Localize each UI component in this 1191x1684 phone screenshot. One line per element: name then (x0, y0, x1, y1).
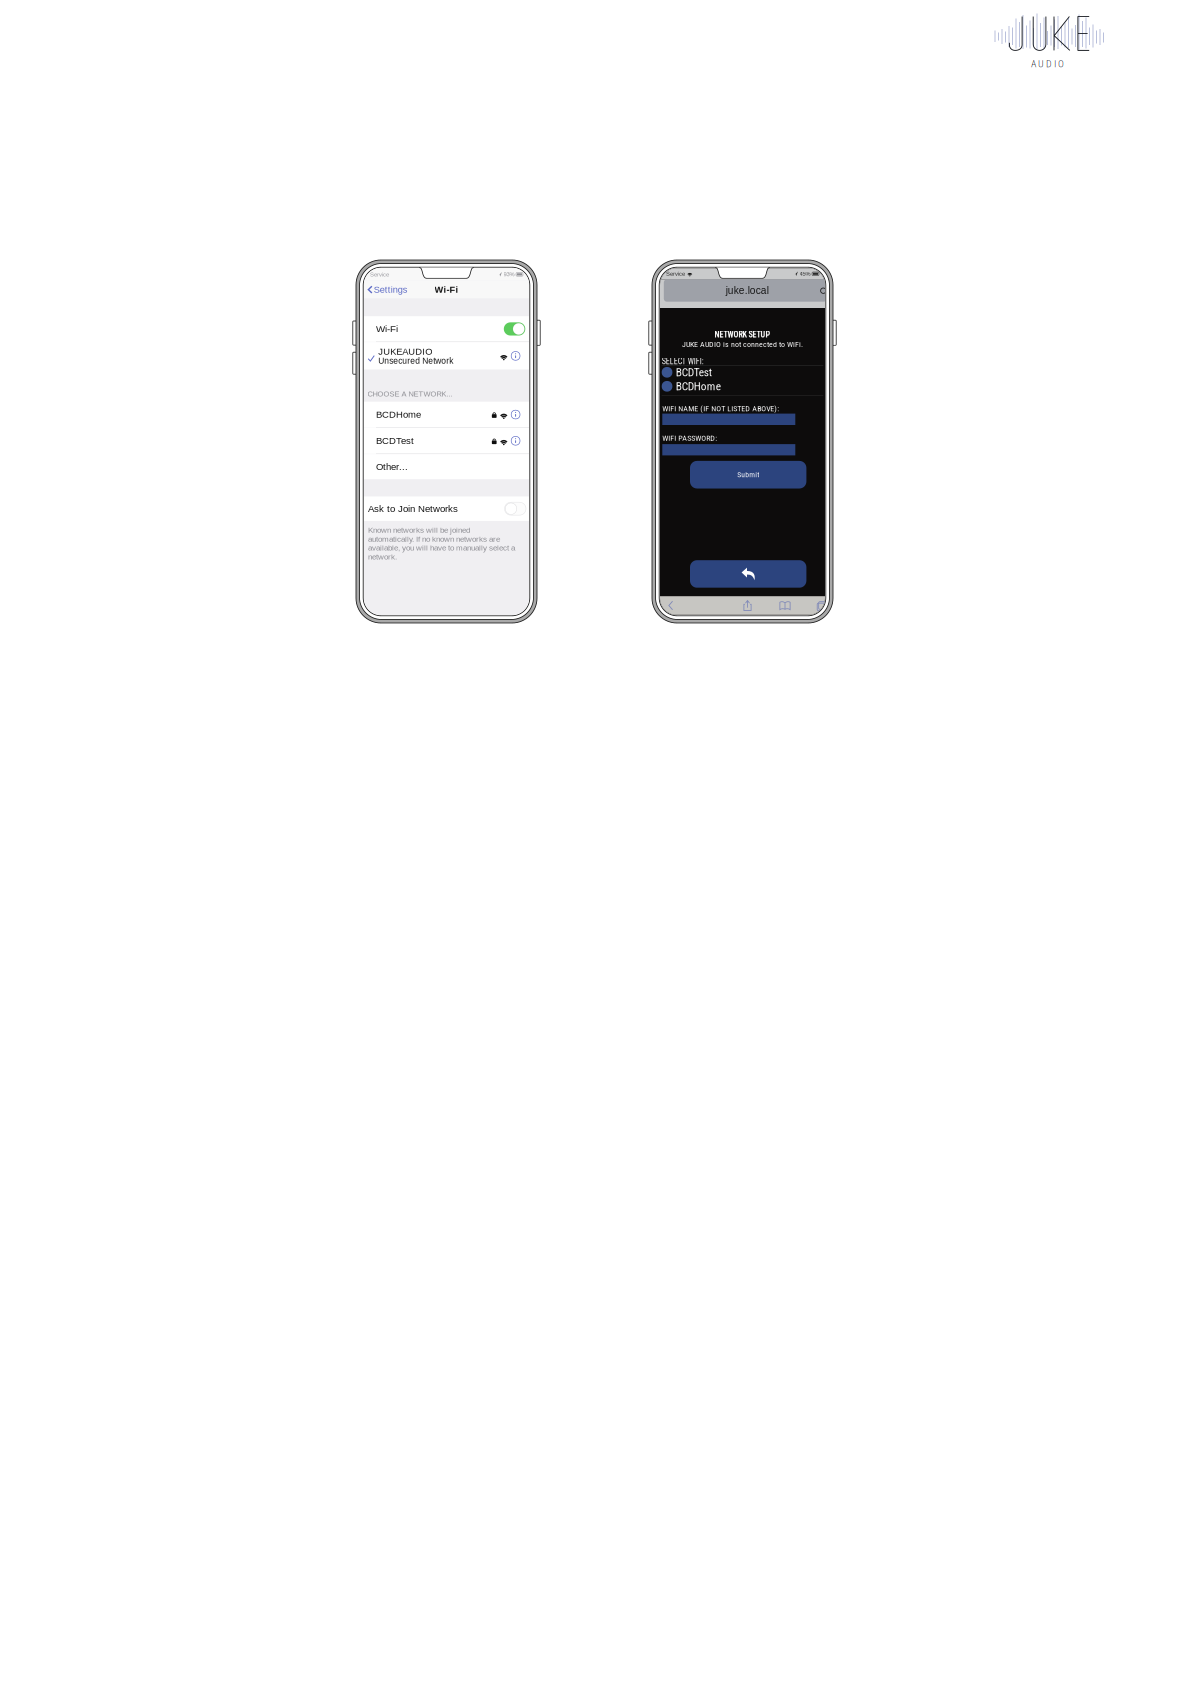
button[interactable]: Settings (364, 281, 411, 298)
staticText: Settings (374, 284, 408, 295)
button[interactable]: Share (738, 597, 756, 613)
staticText: SELECT WIFI: (662, 357, 704, 366)
staticText: Ask to Join Networks (368, 503, 458, 514)
staticText: Unsecured Network (378, 356, 453, 366)
staticText: Service (370, 271, 389, 278)
staticText: A U D I O (1031, 58, 1064, 70)
button[interactable]: Submit (690, 461, 806, 488)
staticText: Submit (737, 470, 759, 479)
staticText: BCDTest (376, 435, 414, 446)
button[interactable]: Back (690, 560, 806, 588)
staticText: BCDHome (676, 380, 721, 393)
button[interactable]: BCDTest (364, 428, 529, 454)
staticText: JUKE AUDIO is not connected to WiFi. (682, 340, 803, 349)
staticText: WIFI PASSWORD: (662, 433, 717, 443)
staticText: CHOOSE A NETWORK... (367, 390, 452, 398)
staticText: BCDHome (376, 409, 421, 420)
staticText: juke.local (726, 285, 769, 296)
button[interactable]: BCDTest (662, 365, 823, 379)
staticText: NETWORK SETUP (714, 330, 770, 339)
button[interactable]: Other... (364, 454, 529, 479)
staticText: JUKEAUDIO (378, 346, 432, 357)
button[interactable]: BCDHome (364, 402, 529, 427)
button[interactable]: BCDHome (662, 379, 823, 393)
staticText: BCDTest (676, 366, 712, 379)
staticText: Wi-Fi (376, 323, 398, 334)
staticText: Service (666, 270, 685, 277)
staticText: 93% (504, 271, 515, 277)
staticText: Other... (376, 461, 408, 472)
staticText: 45% (800, 271, 811, 277)
button[interactable]: Wi-Fi (364, 316, 529, 342)
button[interactable]: Tabs (812, 597, 830, 613)
staticText: WIFI NAME (IF NOT LISTED ABOVE): (662, 404, 779, 413)
staticText: Wi-Fi (434, 284, 458, 295)
staticText: Known networks will be joined automatica… (368, 525, 515, 561)
button[interactable]: Back (661, 597, 679, 613)
button[interactable]: Ask to Join Networks (364, 496, 529, 521)
button[interactable]: Bookmarks (776, 597, 794, 613)
button[interactable]: JUKEAUDIO (364, 342, 529, 370)
